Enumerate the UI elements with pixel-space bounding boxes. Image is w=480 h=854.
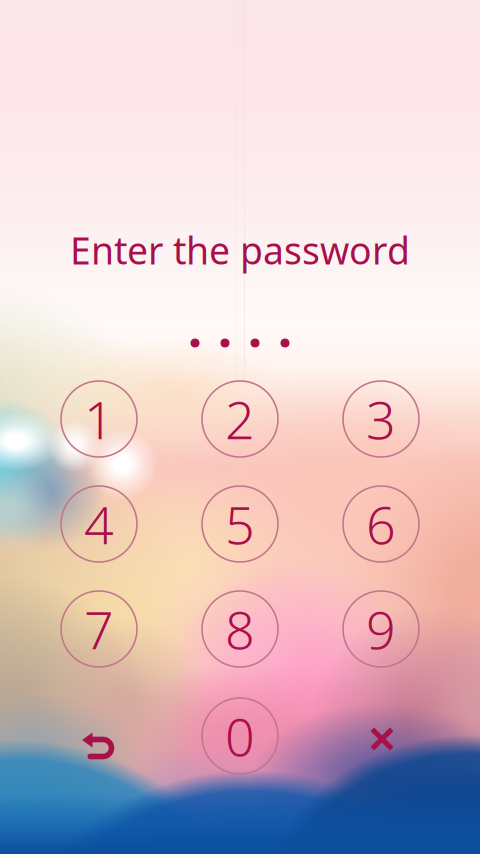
button[interactable]: 0 — [202, 698, 278, 774]
staticText: 0 — [225, 701, 255, 771]
button[interactable]: 2 — [202, 381, 278, 457]
button[interactable]: 8 — [202, 591, 278, 667]
button[interactable]: 5 — [202, 486, 278, 562]
staticText: 6 — [366, 489, 396, 559]
button[interactable]: 9 — [343, 591, 419, 667]
staticText: 5 — [225, 489, 255, 559]
staticText: 8 — [225, 594, 255, 664]
button[interactable]: 7 — [61, 591, 137, 667]
staticText: 1 — [84, 384, 114, 454]
button[interactable]: 3 — [343, 381, 419, 457]
staticText: Enter the password — [70, 225, 410, 275]
button[interactable]: 4 — [61, 486, 137, 562]
staticText: 3 — [366, 384, 396, 454]
button[interactable]: 6 — [343, 486, 419, 562]
button[interactable]: Delete — [61, 698, 137, 774]
staticText: 9 — [366, 594, 396, 664]
button[interactable]: 1 — [61, 381, 137, 457]
staticText: 4 — [84, 489, 114, 559]
staticText: 7 — [84, 594, 114, 664]
staticText: 2 — [225, 384, 255, 454]
button[interactable]: Cancel — [343, 698, 419, 774]
